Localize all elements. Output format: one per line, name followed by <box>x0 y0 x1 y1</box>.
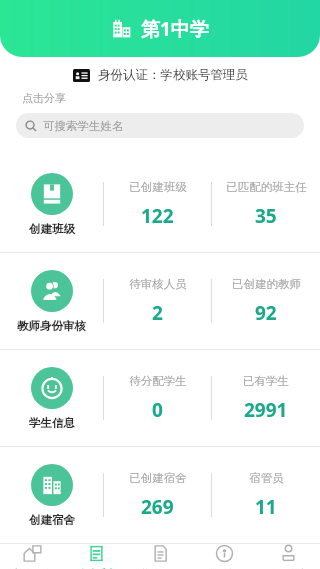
staticText: 个人中心 <box>268 567 308 569</box>
staticText: 0 <box>152 397 163 423</box>
button[interactable]: 已匹配的班主任 <box>212 180 320 229</box>
staticText: 35 <box>255 203 277 229</box>
button[interactable]: 移动后台 <box>64 544 128 569</box>
staticText: 第1中学 <box>141 16 209 42</box>
button[interactable]: 创建班级 <box>0 156 320 252</box>
staticText: 待分配学生 <box>129 374 187 388</box>
button[interactable]: 教师身份审核 <box>0 253 320 349</box>
staticText: 已匹配的班主任 <box>226 180 307 194</box>
button[interactable]: 登录情况 <box>192 544 256 569</box>
staticText: 11 <box>255 494 277 520</box>
staticText: 2 <box>152 300 163 326</box>
staticText: 创建宿舍 <box>29 513 75 527</box>
button[interactable]: 创建宿舍 <box>0 447 320 543</box>
button[interactable]: 基础信息 <box>128 544 192 569</box>
staticText: 学生信息 <box>29 416 75 430</box>
button[interactable]: 待审核人员 <box>104 277 211 326</box>
staticText: 2991 <box>244 397 288 423</box>
button[interactable]: 已创建的教师 <box>212 277 320 326</box>
button[interactable]: 学生信息 <box>0 350 320 446</box>
staticText: 92 <box>255 300 277 326</box>
staticText: 家校互联 <box>12 567 52 569</box>
staticText: 宿管员 <box>249 471 284 485</box>
button[interactable]: 已有学生 <box>212 374 320 423</box>
staticText: 待审核人员 <box>129 277 187 291</box>
staticText: 教师身份审核 <box>17 319 86 333</box>
button[interactable]: 宿管员 <box>212 471 320 520</box>
staticText: 122 <box>141 203 174 229</box>
staticText: 创建班级 <box>29 222 75 236</box>
button[interactable]: 已创建宿舍 <box>104 471 211 520</box>
staticText: 身份认证：学校账号管理员 <box>98 67 248 83</box>
button[interactable]: 家校互联 <box>0 544 64 569</box>
staticText: 已创建宿舍 <box>129 471 187 485</box>
button[interactable]: 已创建班级 <box>104 180 211 229</box>
staticText: 269 <box>141 494 174 520</box>
staticText: 可搜索学生姓名 <box>43 119 124 133</box>
button[interactable]: 点击分享 <box>22 91 320 105</box>
staticText: 已创建班级 <box>129 180 187 194</box>
staticText: 移动后台 <box>76 567 116 569</box>
staticText: 已创建的教师 <box>232 277 301 291</box>
button[interactable]: 个人中心 <box>256 544 320 569</box>
button[interactable]: 待分配学生 <box>104 374 211 423</box>
staticText: 已有学生 <box>243 374 289 388</box>
button[interactable]: 可搜索学生姓名 <box>16 113 304 138</box>
staticText: 点击分享 <box>22 91 66 105</box>
